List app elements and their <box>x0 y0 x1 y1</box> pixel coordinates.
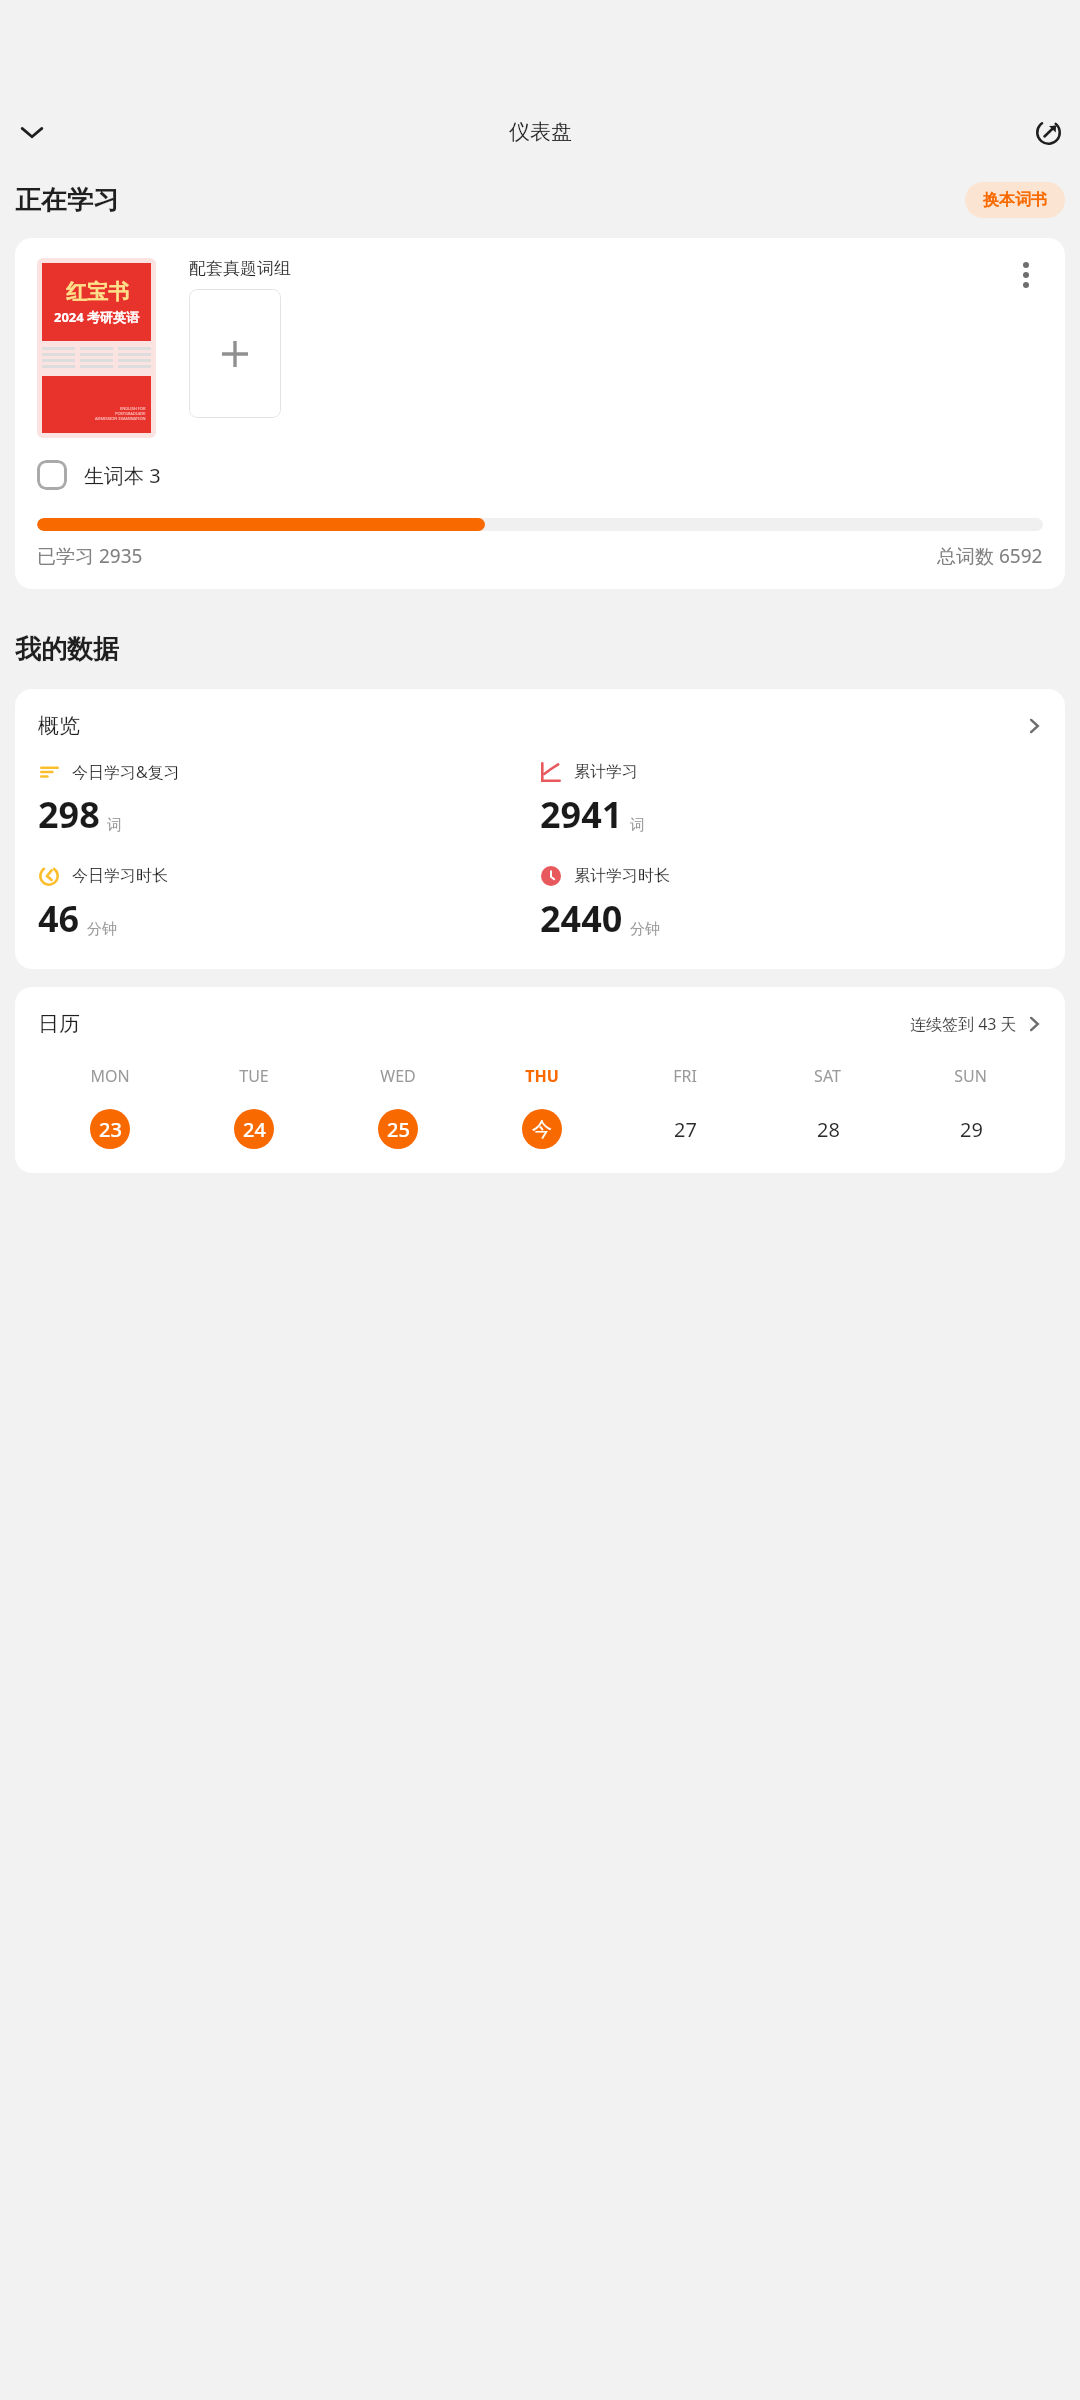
staticText: 红宝书 <box>66 279 129 305</box>
staticText: 连续签到 43 天 <box>910 1013 1017 1035</box>
button[interactable]: 红宝书 <box>15 238 1065 589</box>
button[interactable]: 日历 <box>38 1011 1042 1037</box>
staticText: SAT <box>814 1065 841 1087</box>
staticText: 生词本 3 <box>84 462 161 489</box>
staticText: 正在学习 <box>15 184 119 217</box>
staticText: 分钟 <box>87 920 117 939</box>
staticText: ADMISSION EXAMINATION <box>95 416 146 421</box>
button[interactable]: Collapse <box>10 110 54 154</box>
button[interactable]: 28 <box>808 1109 848 1149</box>
staticText: 24 <box>243 1116 266 1143</box>
staticText: 29 <box>960 1116 983 1143</box>
staticText: 我的数据 <box>15 633 119 666</box>
staticText: 2941 <box>540 790 623 839</box>
staticText: 2440 <box>540 894 623 943</box>
staticText: 27 <box>674 1116 697 1143</box>
staticText: FRI <box>673 1065 697 1087</box>
staticText: 28 <box>817 1116 840 1143</box>
staticText: 分钟 <box>630 920 660 939</box>
button[interactable]: More options <box>1009 258 1043 292</box>
staticText: 累计学习时长 <box>574 866 670 886</box>
button[interactable]: 24 <box>234 1109 274 1149</box>
staticText: 词 <box>630 816 645 835</box>
button[interactable]: 累计学习时长 <box>540 865 1042 943</box>
button[interactable]: Add word list <box>189 289 281 418</box>
staticText: 仪表盘 <box>509 119 572 145</box>
staticText: 298 <box>38 790 100 839</box>
button[interactable]: 今日学习&复习 <box>38 761 540 839</box>
staticText: WED <box>380 1065 416 1087</box>
staticText: 概览 <box>38 713 80 739</box>
staticText: 总词数 6592 <box>937 543 1043 569</box>
staticText: 换本词书 <box>983 190 1047 210</box>
button[interactable]: 累计学习 <box>540 761 1042 839</box>
staticText: 今日学习时长 <box>72 866 168 886</box>
staticText: POSTGRADUATE <box>115 411 146 416</box>
button[interactable]: Share <box>1026 110 1070 154</box>
staticText: 25 <box>387 1116 410 1143</box>
staticText: 已学习 2935 <box>37 543 143 569</box>
button[interactable]: 换本词书 <box>965 182 1065 218</box>
staticText: THU <box>525 1065 559 1087</box>
button[interactable]: 今 <box>522 1109 562 1149</box>
staticText: 今 <box>532 1117 552 1142</box>
staticText: 词 <box>107 816 122 835</box>
staticText: 今日学习&复习 <box>72 761 180 783</box>
staticText: MON <box>90 1065 130 1087</box>
staticText: TUE <box>239 1065 269 1087</box>
staticText: ENGLISH FOR <box>120 406 146 411</box>
staticText: 配套真题词组 <box>189 258 291 279</box>
button[interactable]: 25 <box>378 1109 418 1149</box>
button[interactable]: 今日学习时长 <box>38 865 540 943</box>
staticText: SUN <box>954 1065 987 1087</box>
staticText: 累计学习 <box>574 762 638 782</box>
button[interactable]: 生词本 3 <box>37 460 161 490</box>
button[interactable]: 23 <box>90 1109 130 1149</box>
staticText: 23 <box>99 1116 122 1143</box>
staticText: 46 <box>38 894 80 943</box>
staticText: 2024 考研英语 <box>54 308 140 326</box>
button[interactable]: 概览 <box>38 713 1042 739</box>
button[interactable]: 29 <box>951 1109 991 1149</box>
staticText: 日历 <box>38 1011 80 1037</box>
button[interactable]: 27 <box>665 1109 705 1149</box>
